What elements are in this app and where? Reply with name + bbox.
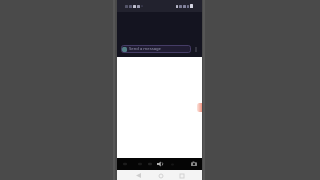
button[interactable]: Send [192, 45, 200, 53]
button[interactable]: Volume [155, 158, 165, 170]
button[interactable]: Back [134, 171, 143, 180]
button[interactable]: Menu [120, 158, 130, 170]
button[interactable]: Chat [135, 158, 145, 170]
button[interactable]: Send a message [121, 45, 191, 53]
button[interactable]: Home [156, 171, 165, 180]
staticText: Send a message [129, 46, 161, 52]
button[interactable]: Camera [189, 158, 199, 170]
button[interactable]: List [145, 158, 155, 170]
button[interactable]: Recents [177, 171, 186, 180]
